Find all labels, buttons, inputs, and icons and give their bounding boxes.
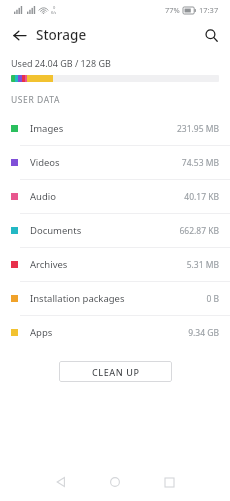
- staticText: Archives: [30, 258, 68, 271]
- staticText: 0 B: [206, 293, 219, 305]
- button[interactable]: Videos: [0, 146, 230, 179]
- staticText: Audio: [30, 190, 56, 203]
- staticText: 40.17 KB: [184, 191, 219, 203]
- button[interactable]: Recent apps: [149, 463, 189, 501]
- staticText: 0: [53, 5, 56, 10]
- staticText: Videos: [30, 156, 60, 169]
- button[interactable]: Search: [198, 22, 224, 48]
- button[interactable]: Home: [95, 463, 135, 501]
- button[interactable]: Back: [7, 23, 31, 47]
- staticText: 77%: [165, 5, 180, 15]
- button[interactable]: Documents: [0, 214, 230, 247]
- staticText: Apps: [30, 326, 53, 339]
- button[interactable]: Audio: [0, 180, 230, 213]
- button[interactable]: Back: [41, 463, 81, 501]
- staticText: Storage: [36, 26, 87, 44]
- staticText: Documents: [30, 224, 82, 237]
- staticText: K/s: [51, 10, 57, 15]
- staticText: 662.87 KB: [179, 225, 219, 237]
- staticText: 9.34 GB: [188, 327, 219, 339]
- button[interactable]: Installation packages: [0, 282, 230, 315]
- staticText: CLEAN UP: [92, 366, 140, 378]
- staticText: Used 24.04 GB / 128 GB: [11, 57, 111, 69]
- button[interactable]: Apps: [0, 316, 230, 349]
- staticText: 231.95 MB: [176, 123, 219, 135]
- button[interactable]: Archives: [0, 248, 230, 281]
- staticText: 17:37: [199, 5, 219, 15]
- staticText: 74.53 MB: [181, 157, 219, 169]
- staticText: 5.31 MB: [186, 259, 219, 271]
- staticText: Installation packages: [30, 292, 125, 305]
- button[interactable]: Images: [0, 112, 230, 145]
- staticText: USER DATA: [11, 94, 60, 106]
- button[interactable]: CLEAN UP: [59, 361, 172, 382]
- staticText: Images: [30, 122, 64, 135]
